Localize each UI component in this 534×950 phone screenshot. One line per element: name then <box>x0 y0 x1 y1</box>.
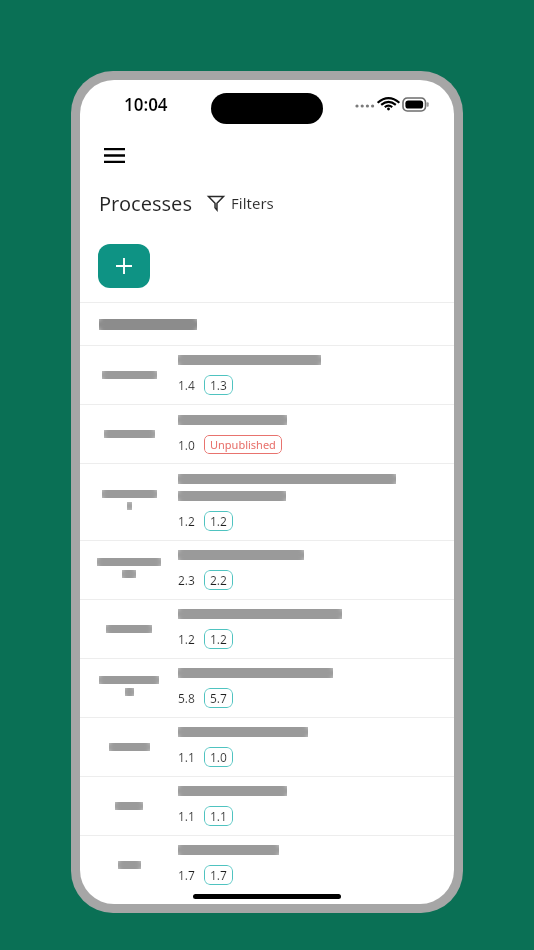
staticText: 1.2 <box>178 513 195 529</box>
staticText: 1.7 <box>210 867 227 883</box>
staticText: 2.2 <box>210 572 227 588</box>
button[interactable]: Menu <box>92 133 136 177</box>
button[interactable]: Filters <box>206 187 276 219</box>
button[interactable]: Add process <box>98 244 150 288</box>
button[interactable]: 1.2 <box>80 464 454 540</box>
staticText: 5.8 <box>178 690 195 706</box>
staticText: 1.4 <box>178 377 195 393</box>
staticText: 1.2 <box>210 513 227 529</box>
button[interactable]: 5.8 <box>80 659 454 717</box>
staticText: 1.1 <box>210 808 227 824</box>
staticText: 1.0 <box>178 437 195 453</box>
button[interactable]: 2.3 <box>80 541 454 599</box>
staticText: 1.2 <box>210 631 227 647</box>
staticText: 1.7 <box>178 867 195 883</box>
staticText: Processes <box>99 190 192 217</box>
staticText: 5.7 <box>210 690 227 706</box>
staticText: 2.3 <box>178 572 195 588</box>
button[interactable]: 1.7 <box>80 836 454 894</box>
staticText: 1.1 <box>178 808 195 824</box>
button[interactable]: 1.2 <box>80 600 454 658</box>
staticText: 1.3 <box>210 377 227 393</box>
staticText: Unpublished <box>210 437 276 452</box>
button[interactable]: 1.1 <box>80 777 454 835</box>
staticText: 10:04 <box>124 93 168 116</box>
staticText: 1.2 <box>178 631 195 647</box>
button[interactable]: 1.1 <box>80 718 454 776</box>
button[interactable]: 1.0 <box>80 405 454 463</box>
staticText: 1.0 <box>210 749 227 765</box>
staticText: 1.1 <box>178 749 195 765</box>
staticText: Filters <box>231 193 274 213</box>
button[interactable]: 1.4 <box>80 346 454 404</box>
